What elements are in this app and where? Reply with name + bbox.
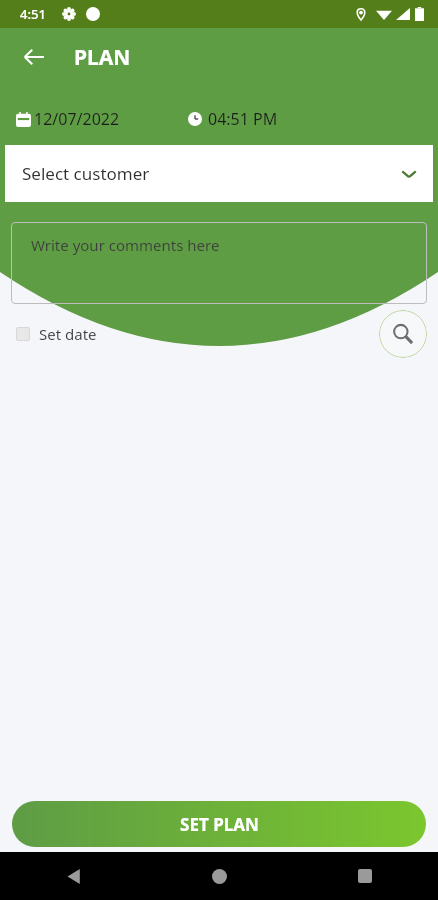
button[interactable]: Select customer xyxy=(5,145,433,202)
button[interactable]: Search xyxy=(379,310,427,358)
staticText: SET PLAN xyxy=(180,813,259,836)
button[interactable]: Set date xyxy=(16,324,97,344)
button[interactable]: Back xyxy=(12,35,56,79)
button[interactable]: SET PLAN xyxy=(12,801,426,847)
staticText: 12/07/2022 xyxy=(34,108,120,130)
staticText: 04:51 PM xyxy=(208,108,278,130)
staticText: PLAN xyxy=(74,43,131,72)
button[interactable]: Back xyxy=(53,856,93,896)
staticText: 4:51 xyxy=(20,5,46,23)
staticText: Select customer xyxy=(22,162,150,185)
staticText: Write your comments here xyxy=(31,235,220,255)
button[interactable]: Write your comments here xyxy=(11,222,427,304)
button[interactable]: Recent apps xyxy=(345,856,385,896)
staticText: Set date xyxy=(39,324,97,344)
button[interactable]: 04:51 PM xyxy=(188,108,278,130)
button[interactable]: Home xyxy=(199,856,239,896)
button[interactable]: 12/07/2022 xyxy=(16,108,120,130)
